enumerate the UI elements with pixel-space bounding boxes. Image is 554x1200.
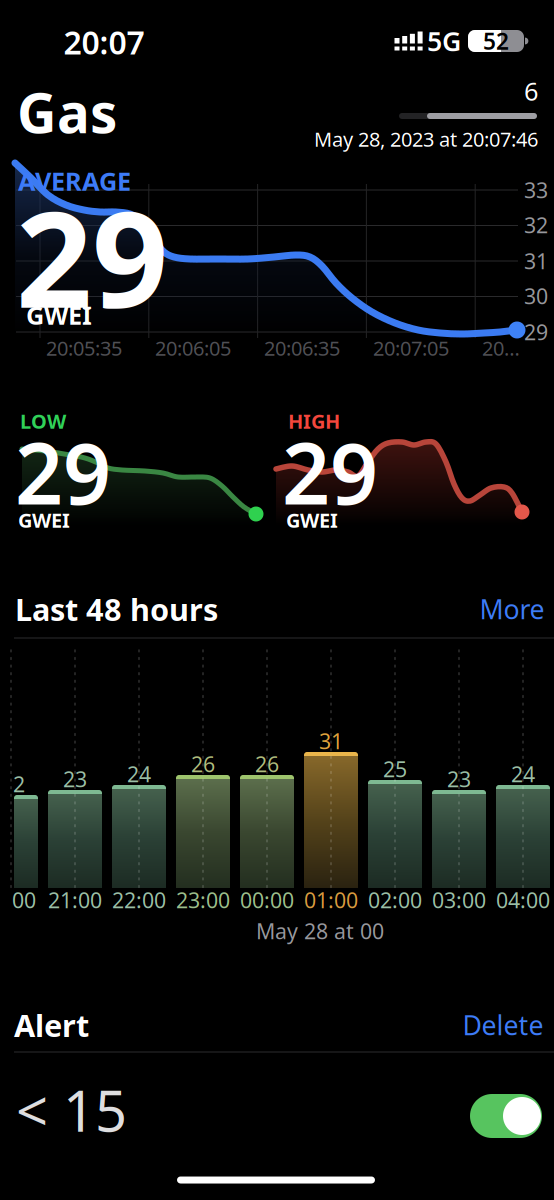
staticText: More <box>479 591 544 627</box>
staticText: 22:00 <box>112 886 166 914</box>
staticText: 31 <box>524 247 548 275</box>
staticText: 20:06:05 <box>155 335 231 361</box>
staticText: 31 <box>319 727 343 755</box>
staticText: 33 <box>524 176 548 204</box>
staticText: 32 <box>524 211 548 239</box>
staticText: 21:00 <box>48 886 102 914</box>
staticText: May 28, 2023 at 20:07:46 <box>314 126 538 152</box>
staticText: 01:00 <box>304 886 358 914</box>
staticText: 04:00 <box>496 886 550 914</box>
staticText: 20:07 <box>63 21 144 63</box>
staticText: 20:06:35 <box>264 335 340 361</box>
staticText: 29 <box>282 416 378 528</box>
staticText: 26 <box>255 750 279 778</box>
staticText: 23 <box>447 765 471 793</box>
staticText: 52 <box>483 26 509 56</box>
staticText: 24 <box>511 760 535 788</box>
staticText: 29 <box>524 318 548 346</box>
staticText: < 15 <box>16 1073 127 1147</box>
staticText: AVERAGE <box>18 164 131 198</box>
staticText: 29 <box>15 416 111 528</box>
staticText: 25 <box>383 755 407 783</box>
staticText: 2 <box>13 770 25 798</box>
staticText: 20:05:35 <box>46 335 122 361</box>
staticText: 03:00 <box>432 886 486 914</box>
button[interactable]: Alert below 15 enabled <box>470 1094 542 1138</box>
staticText: GWEI <box>286 507 338 533</box>
staticText: GWEI <box>18 507 70 533</box>
staticText: Gas <box>17 76 117 148</box>
staticText: May 28 at 00 <box>256 917 384 945</box>
staticText: 20:07:05 <box>373 335 449 361</box>
button[interactable]: More <box>479 591 544 627</box>
staticText: 23 <box>63 765 87 793</box>
staticText: 6 <box>524 74 538 108</box>
staticText: Delete <box>462 1007 543 1043</box>
staticText: LOW <box>20 408 66 434</box>
staticText: 29 <box>16 167 168 345</box>
button[interactable]: Delete <box>462 1007 543 1043</box>
staticText: 00:00 <box>240 886 294 914</box>
staticText: 02:00 <box>368 886 422 914</box>
staticText: 5G <box>427 23 461 59</box>
staticText: 20… <box>482 335 520 361</box>
staticText: Last 48 hours <box>15 589 218 629</box>
staticText: Alert <box>14 1005 89 1045</box>
staticText: 26 <box>191 750 215 778</box>
staticText: 23:00 <box>176 886 230 914</box>
staticText: GWEI <box>26 298 92 332</box>
staticText: 24 <box>127 760 151 788</box>
staticText: 00 <box>12 886 36 914</box>
staticText: 30 <box>524 282 548 310</box>
staticText: HIGH <box>288 408 340 434</box>
